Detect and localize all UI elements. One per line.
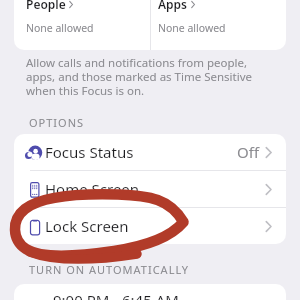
staticText: None allowed <box>158 21 226 35</box>
staticText: People <box>26 0 66 12</box>
button[interactable]: 9:00 PM - 6:45 AM <box>14 284 286 300</box>
staticText: Allow calls and notifications from peopl… <box>26 55 254 98</box>
staticText: OPTIONS <box>29 115 85 130</box>
staticText: Apps <box>158 0 188 12</box>
button[interactable] <box>151 0 286 50</box>
button[interactable]: Focus Status <box>14 134 286 170</box>
button[interactable]: Apps <box>158 0 195 12</box>
other: Hand drawn circle highlighting Lock Scre… <box>0 0 300 300</box>
staticText: 9:00 PM - 6:45 AM <box>53 290 179 300</box>
button[interactable]: People <box>26 0 73 12</box>
staticText: TURN ON AUTOMATICALLY <box>29 262 190 277</box>
button[interactable] <box>14 0 150 50</box>
button[interactable]: Home Screen <box>14 171 286 207</box>
button[interactable]: Lock Screen <box>14 208 286 244</box>
staticText: Home Screen <box>45 179 140 199</box>
staticText: Off <box>237 142 260 162</box>
staticText: Lock Screen <box>45 216 129 236</box>
staticText: Focus Status <box>45 142 134 162</box>
staticText: None allowed <box>26 21 94 35</box>
